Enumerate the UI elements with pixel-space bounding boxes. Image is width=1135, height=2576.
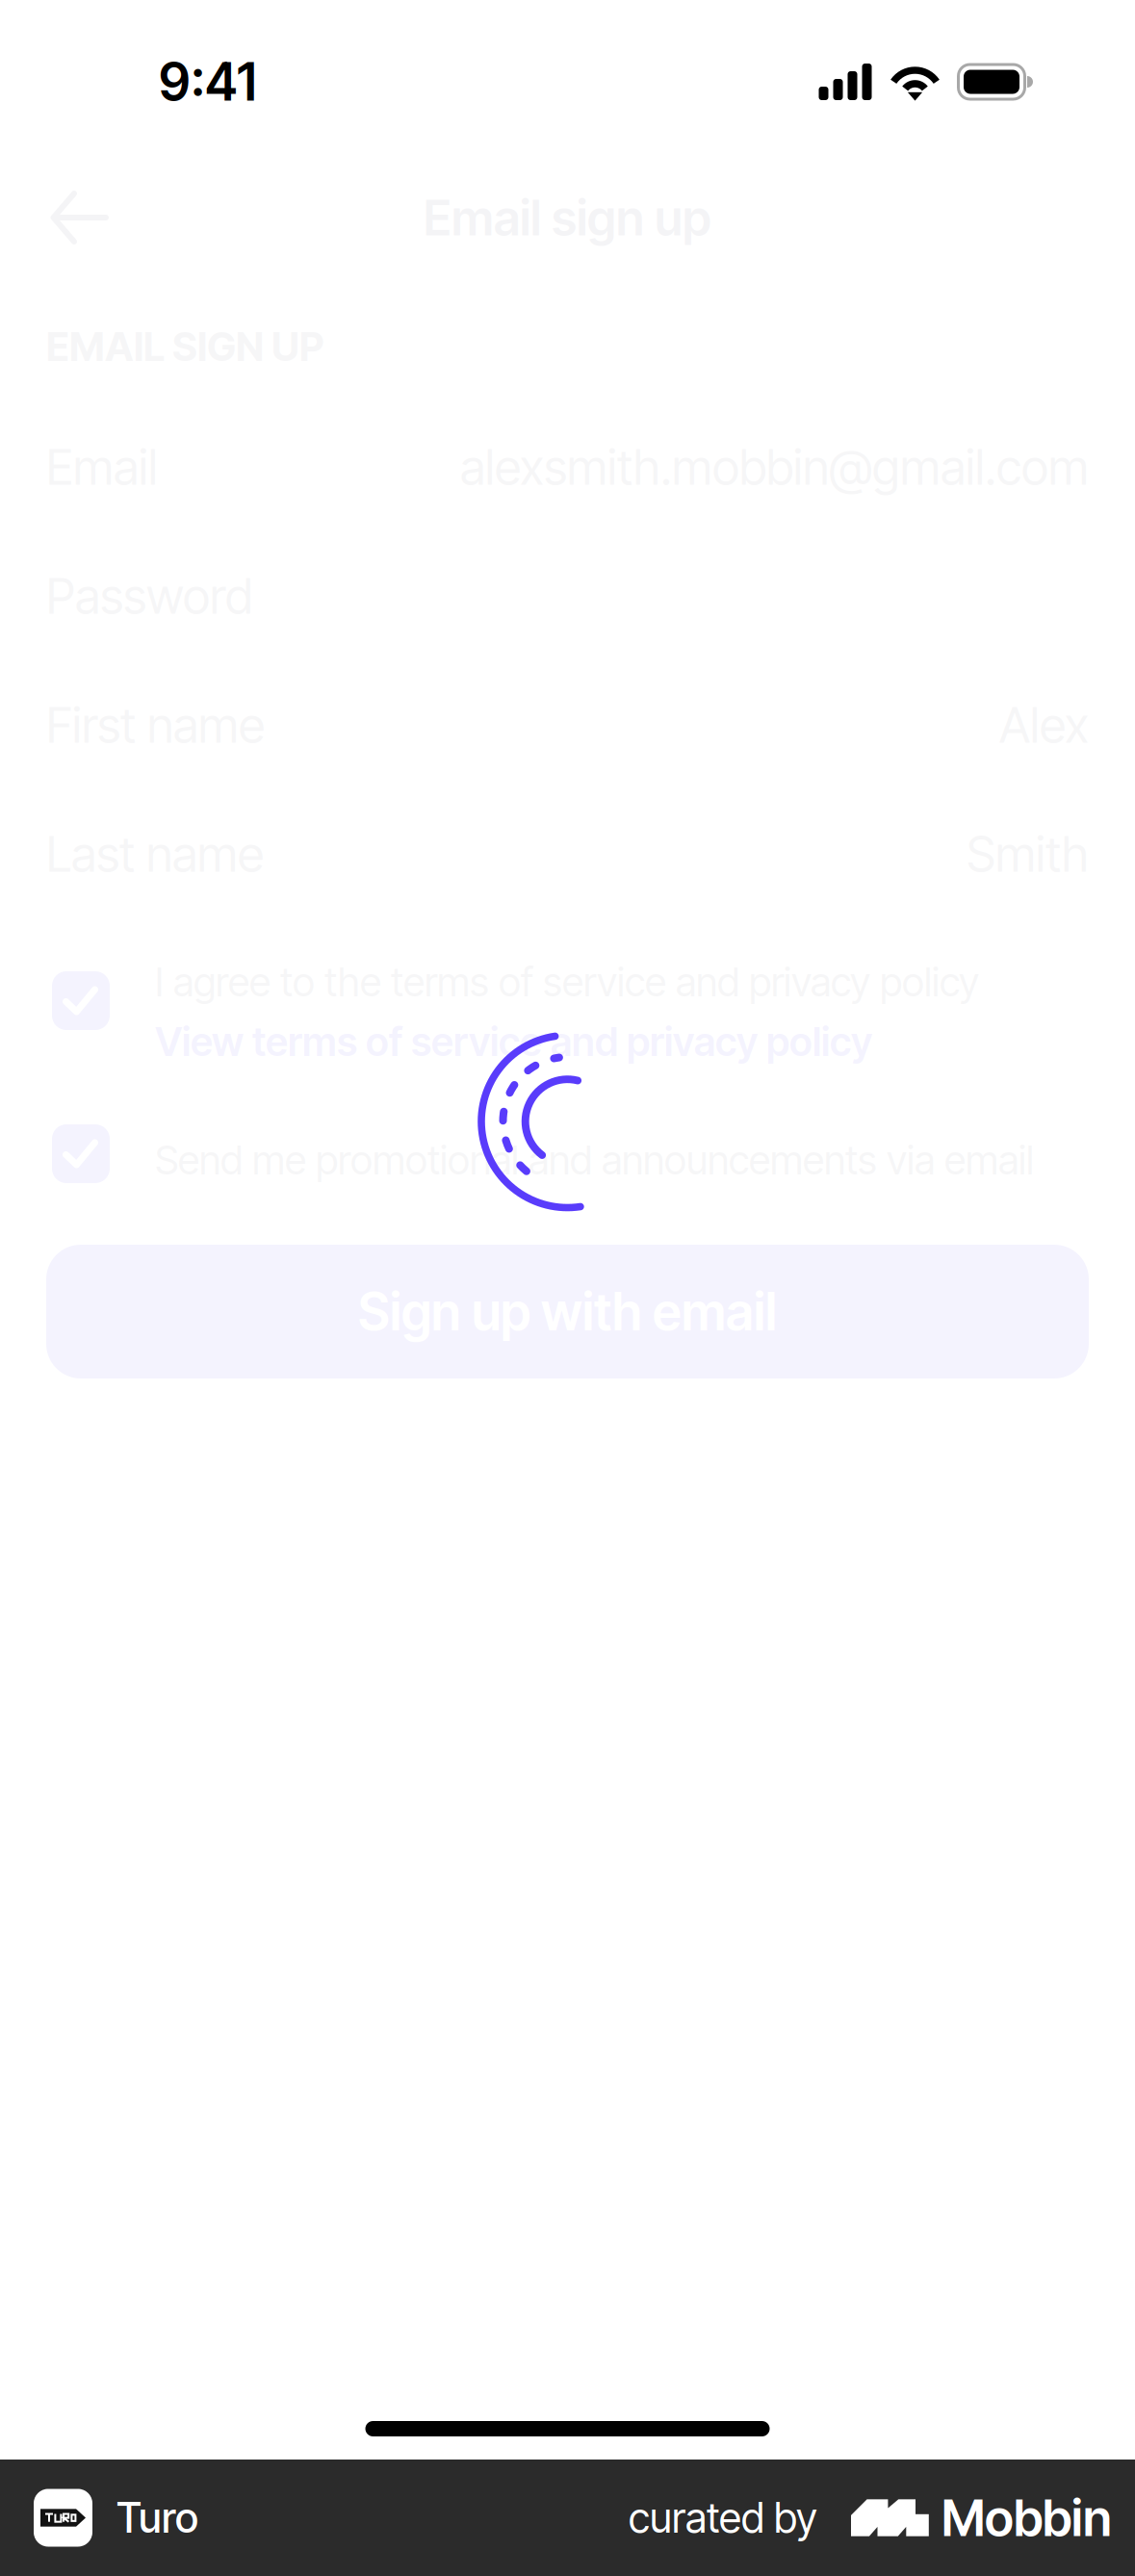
button[interactable]: Send me promotional and announcements vi… bbox=[0, 1124, 1135, 1184]
staticText: Sign up with email bbox=[358, 1280, 777, 1343]
staticText: View terms of service and privacy policy bbox=[155, 1018, 872, 1066]
staticText: I agree to the terms of service and priv… bbox=[155, 958, 979, 1006]
staticText: Last name bbox=[46, 824, 264, 883]
staticText: Smith bbox=[967, 824, 1089, 883]
button[interactable]: I agree to the terms of service and priv… bbox=[0, 958, 1135, 1060]
staticText: Email sign up bbox=[424, 188, 711, 247]
staticText: Password bbox=[46, 566, 252, 625]
staticText: alexsmith.mobbin@gmail.com bbox=[460, 437, 1089, 496]
staticText: Mobbin bbox=[942, 2487, 1112, 2548]
staticText: curated by bbox=[629, 2493, 817, 2543]
staticText: Send me promotional and announcements vi… bbox=[155, 1136, 1034, 1184]
staticText: Email bbox=[46, 437, 158, 496]
staticText: Alex bbox=[999, 695, 1089, 754]
staticText: Turo bbox=[116, 2493, 198, 2543]
staticText: First name bbox=[46, 695, 265, 754]
staticText: EMAIL SIGN UP bbox=[46, 322, 323, 371]
staticText: 9:41 bbox=[159, 51, 257, 113]
button[interactable]: Sign up with email bbox=[0, 1245, 1135, 1378]
